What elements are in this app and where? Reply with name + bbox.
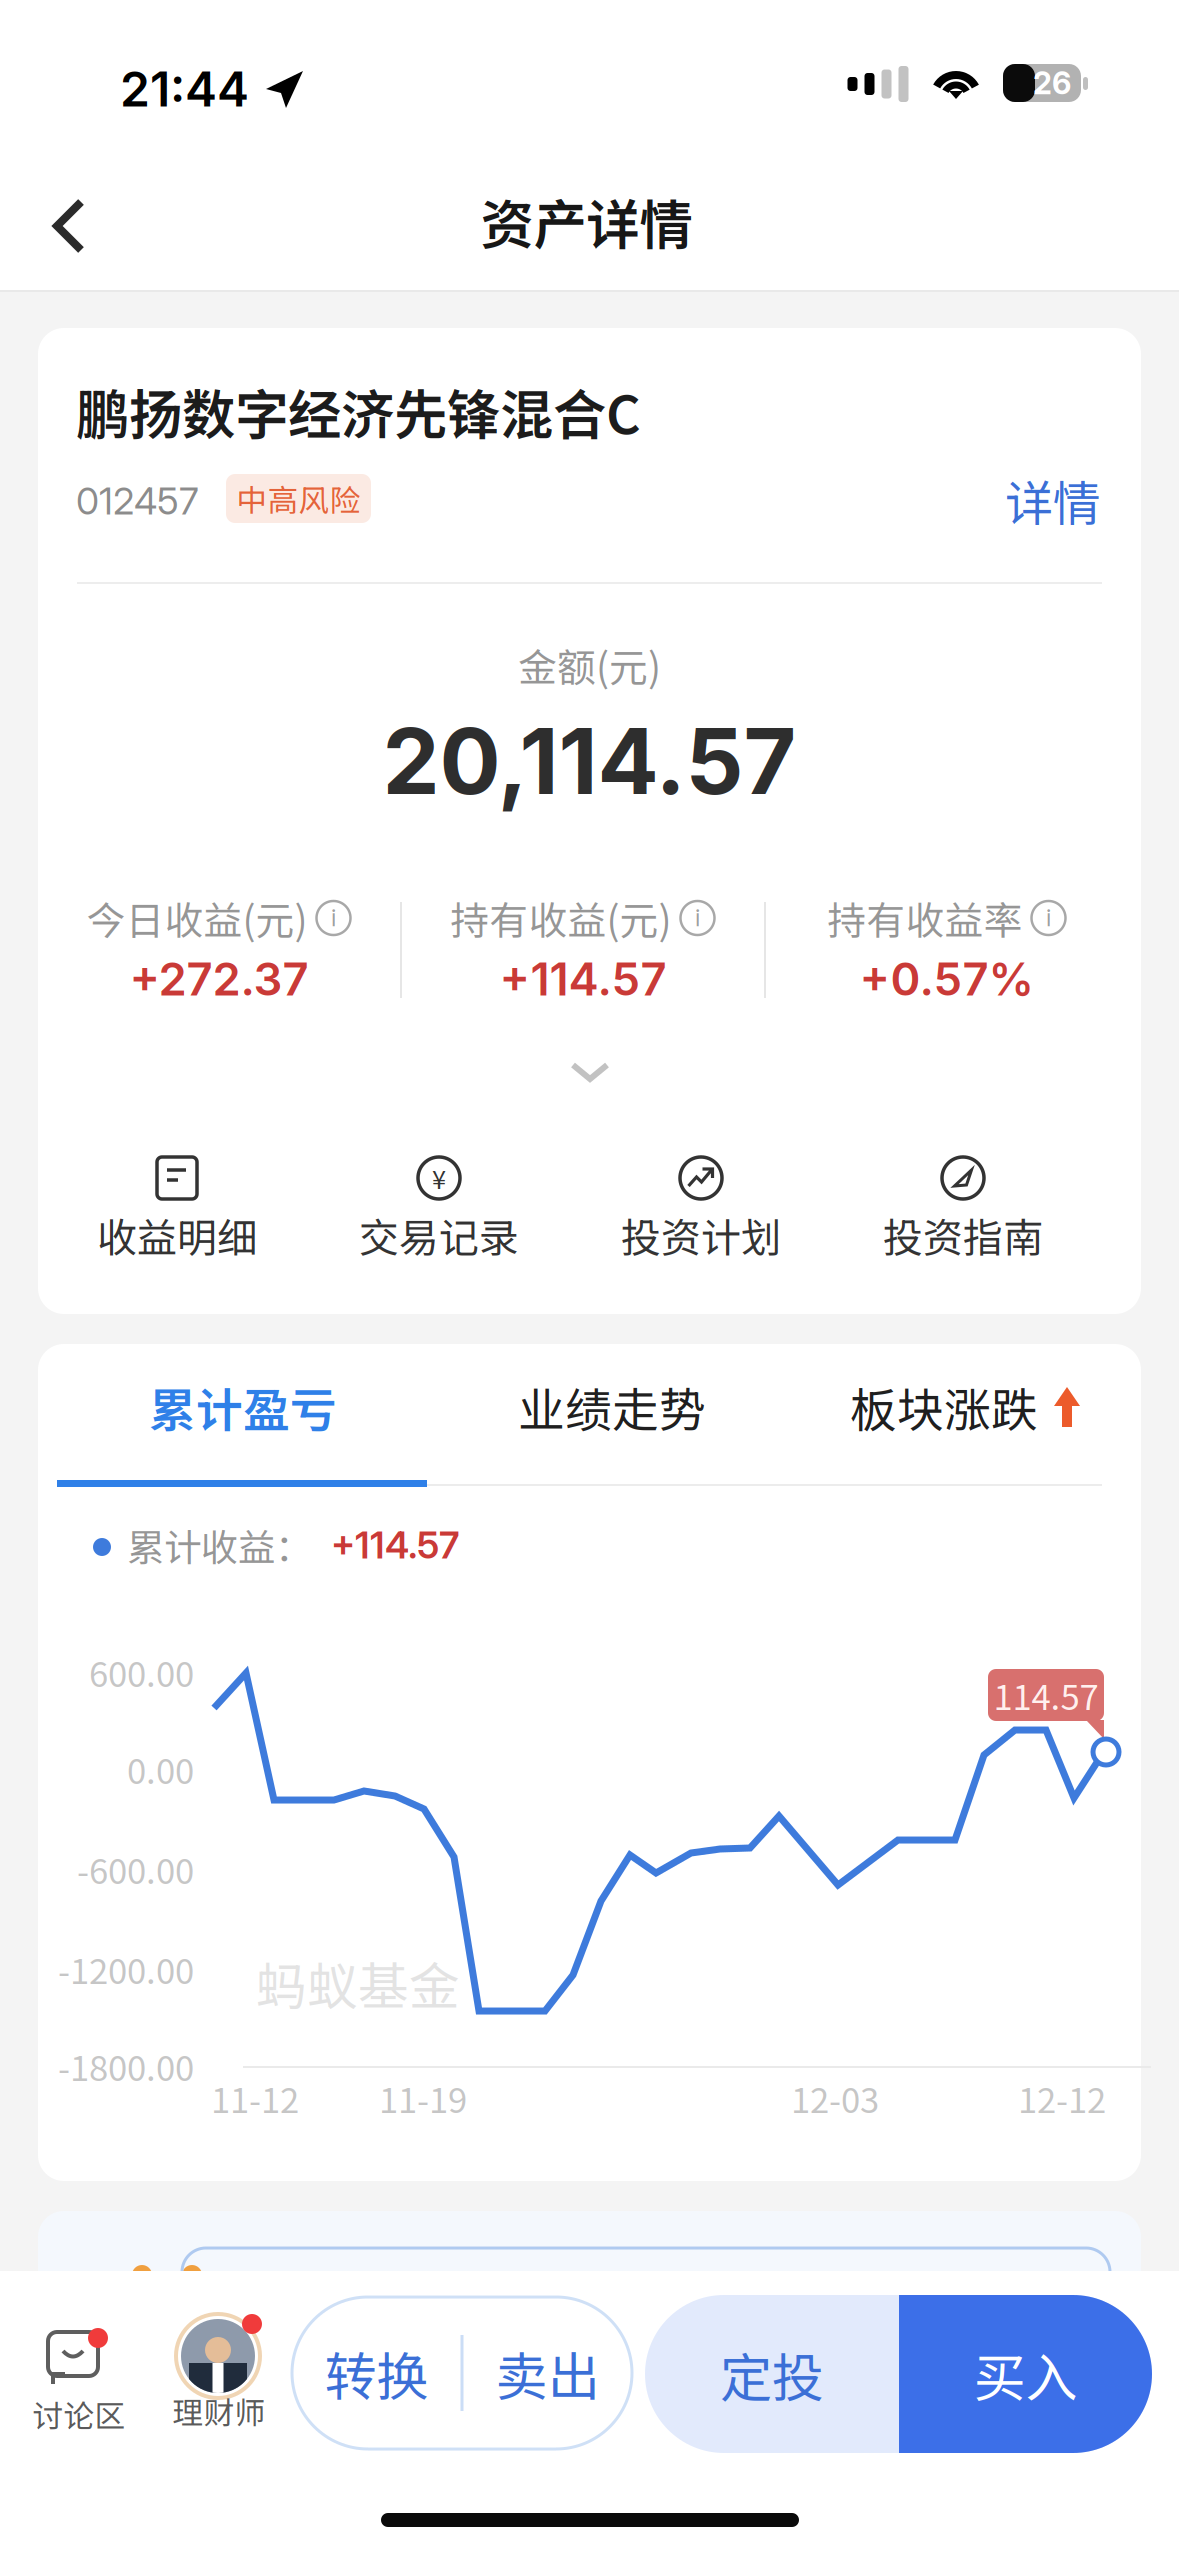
button[interactable]: 返回 xyxy=(13,165,125,287)
staticText: 定投 xyxy=(720,2336,824,2412)
button[interactable]: ¥ xyxy=(308,1149,570,1267)
staticText: 12-12 xyxy=(1018,2073,1106,2123)
staticText: 鹏扬数字经济先锋混合C xyxy=(76,372,641,450)
staticText: ¥ xyxy=(432,1160,446,1196)
staticText: 今日收益(元) xyxy=(86,890,307,946)
staticText: 中高风险 xyxy=(236,476,360,521)
staticText: 蚂蚁基金 xyxy=(256,1946,460,2020)
staticText: 11-19 xyxy=(379,2073,467,2123)
staticText: 26 xyxy=(1033,64,1071,101)
staticText: 11-12 xyxy=(211,2073,299,2123)
staticText: 12-03 xyxy=(791,2073,879,2123)
staticText: 金额(元) xyxy=(518,637,661,693)
staticText: 600.00 xyxy=(89,1647,194,1697)
staticText: 卖出 xyxy=(495,2335,599,2411)
button[interactable]: 讨论区 xyxy=(4,2319,154,2447)
staticText: 理财师 xyxy=(172,2389,265,2433)
button[interactable]: 定投 xyxy=(645,2295,899,2453)
staticText: 投资指南 xyxy=(883,1206,1043,1264)
staticText: i xyxy=(331,904,336,932)
button[interactable]: 转换 xyxy=(292,2297,460,2449)
staticText: 详情 xyxy=(1005,465,1101,535)
staticText: +0.57% xyxy=(859,952,1034,1006)
staticText: 投资计划 xyxy=(621,1206,781,1264)
staticText: 114.57 xyxy=(993,1670,1098,1720)
staticText: +114.57 xyxy=(331,1522,459,1568)
staticText: 21:44 xyxy=(120,60,249,118)
button[interactable]: 卖出 xyxy=(463,2297,631,2449)
staticText: 累计盈亏 xyxy=(149,1373,337,1441)
staticText: 买入 xyxy=(973,2336,1077,2412)
staticText: 累计收益： xyxy=(127,1518,312,1572)
staticText: 持有收益率 xyxy=(827,890,1022,946)
button[interactable]: 投资计划 xyxy=(570,1149,832,1267)
staticText: 012457 xyxy=(76,478,199,524)
staticText: -600.00 xyxy=(77,1844,194,1894)
staticText: 讨论区 xyxy=(32,2392,125,2436)
button[interactable]: 累计盈亏 xyxy=(58,1346,428,1468)
staticText: +272.37 xyxy=(129,952,308,1006)
button[interactable]: 投资指南 xyxy=(832,1149,1094,1267)
button[interactable]: 板块涨跌 xyxy=(795,1346,1135,1468)
button[interactable]: 买入 xyxy=(899,2295,1152,2453)
button[interactable]: 收益明细 xyxy=(46,1149,308,1267)
button[interactable]: 详情 xyxy=(941,463,1101,537)
staticText: 20,114.57 xyxy=(382,706,796,816)
staticText: i xyxy=(1046,904,1051,932)
staticText: 持有收益(元) xyxy=(450,890,671,946)
button[interactable]: 展开更多 xyxy=(500,1036,680,1108)
button[interactable]: 理财师 xyxy=(144,2309,294,2445)
staticText: 板块涨跌 xyxy=(850,1373,1038,1441)
button[interactable]: 业绩走势 xyxy=(447,1346,777,1468)
staticText: 收益明细 xyxy=(97,1206,257,1264)
staticText: 资产详情 xyxy=(480,182,692,260)
staticText: 转换 xyxy=(324,2335,428,2411)
staticText: 0.00 xyxy=(127,1744,194,1794)
staticText: -1200.00 xyxy=(58,1944,194,1994)
staticText: +114.57 xyxy=(499,952,666,1006)
staticText: -1800.00 xyxy=(58,2041,194,2091)
staticText: 业绩走势 xyxy=(518,1373,706,1441)
staticText: i xyxy=(695,904,700,932)
staticText: 交易记录 xyxy=(359,1206,519,1264)
